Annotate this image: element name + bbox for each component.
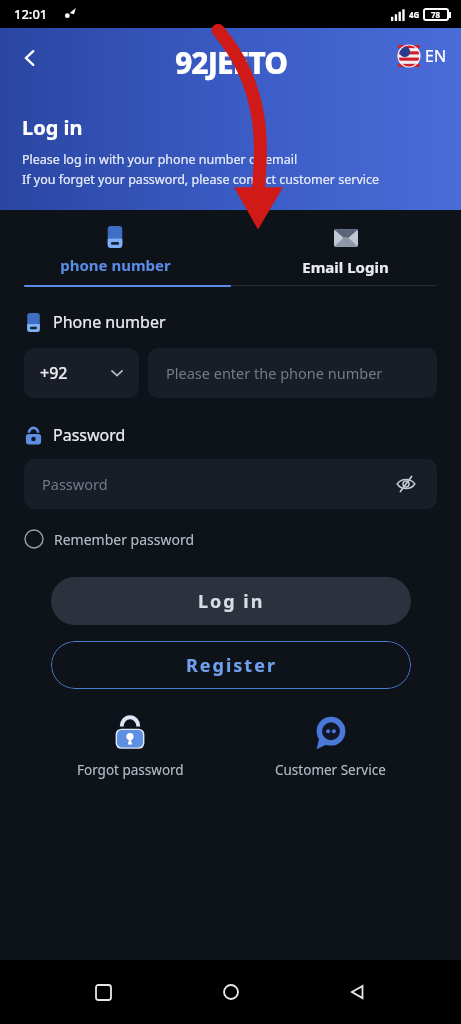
staticText: Register: [186, 653, 277, 678]
staticText: Password: [42, 474, 108, 494]
button[interactable]: Customer Service: [230, 711, 431, 783]
button[interactable]: Forgot password: [30, 711, 230, 783]
button[interactable]: Show password: [393, 471, 419, 497]
button[interactable]: Please enter the phone number: [148, 348, 437, 398]
staticText: Forgot password: [77, 761, 184, 779]
staticText: +92: [40, 362, 68, 384]
staticText: 4G: [409, 9, 420, 20]
staticText: 92JEETO: [175, 42, 287, 83]
button[interactable]: Back: [8, 36, 52, 80]
staticText: Log in: [198, 589, 265, 614]
staticText: Phone number: [53, 311, 166, 333]
button[interactable]: Recents: [79, 968, 127, 1016]
staticText: Log in: [22, 114, 83, 141]
staticText: 78: [431, 9, 441, 20]
staticText: EN: [425, 45, 447, 67]
button[interactable]: Home: [207, 968, 255, 1016]
button[interactable]: Register: [51, 641, 411, 689]
button[interactable]: Password: [24, 459, 437, 509]
staticText: phone number: [60, 255, 171, 275]
button[interactable]: phone number: [0, 218, 230, 283]
staticText: Customer Service: [275, 761, 386, 779]
staticText: Please log in with your phone number or …: [22, 151, 298, 168]
staticText: Remember password: [54, 530, 195, 549]
staticText: Email Login: [302, 257, 389, 277]
staticText: 12:01: [14, 5, 48, 23]
button[interactable]: Remember password: [20, 523, 199, 555]
staticText: Please enter the phone number: [166, 363, 383, 383]
button[interactable]: EN: [394, 42, 451, 70]
button[interactable]: Back: [334, 968, 382, 1016]
staticText: Password: [53, 424, 126, 446]
button[interactable]: +92: [24, 348, 139, 398]
button[interactable]: Email Login: [230, 218, 461, 285]
button[interactable]: Log in: [51, 577, 411, 625]
staticText: If you forget your password, please cont…: [22, 171, 380, 188]
